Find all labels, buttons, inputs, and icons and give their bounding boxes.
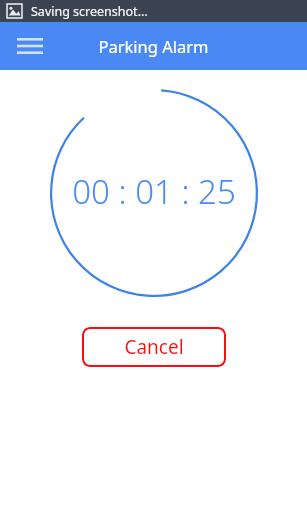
- button[interactable]: Open navigation menu: [10, 26, 50, 66]
- staticText: 00 : 01 : 25: [72, 169, 236, 214]
- staticText: Saving screenshot…: [31, 3, 148, 20]
- button[interactable]: Cancel: [82, 327, 226, 367]
- staticText: Parking Alarm: [98, 35, 209, 57]
- staticText: Cancel: [124, 334, 184, 360]
